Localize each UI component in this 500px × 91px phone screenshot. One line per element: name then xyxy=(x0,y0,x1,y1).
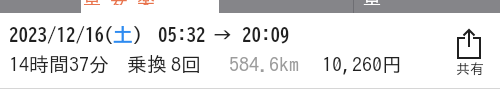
button[interactable]: 共有 xyxy=(446,24,492,82)
staticText: 2023/12/16(土) xyxy=(9,25,142,44)
button[interactable]: 早 安 楽 xyxy=(81,0,219,13)
staticText: 14時間37分 xyxy=(9,54,109,74)
staticText: 05:32 xyxy=(158,25,206,44)
staticText: 8回 xyxy=(171,54,201,74)
staticText: 20:09 xyxy=(242,25,290,44)
staticText: → xyxy=(213,25,232,44)
staticText: 早 xyxy=(363,0,381,5)
staticText: 10,260円 xyxy=(322,54,402,74)
button[interactable]: 早 xyxy=(219,0,500,13)
staticText: 早 安 楽 xyxy=(83,0,155,5)
staticText: 共有 xyxy=(456,62,484,76)
staticText: 584.6km xyxy=(229,54,299,74)
staticText: 乗換 xyxy=(127,54,167,74)
